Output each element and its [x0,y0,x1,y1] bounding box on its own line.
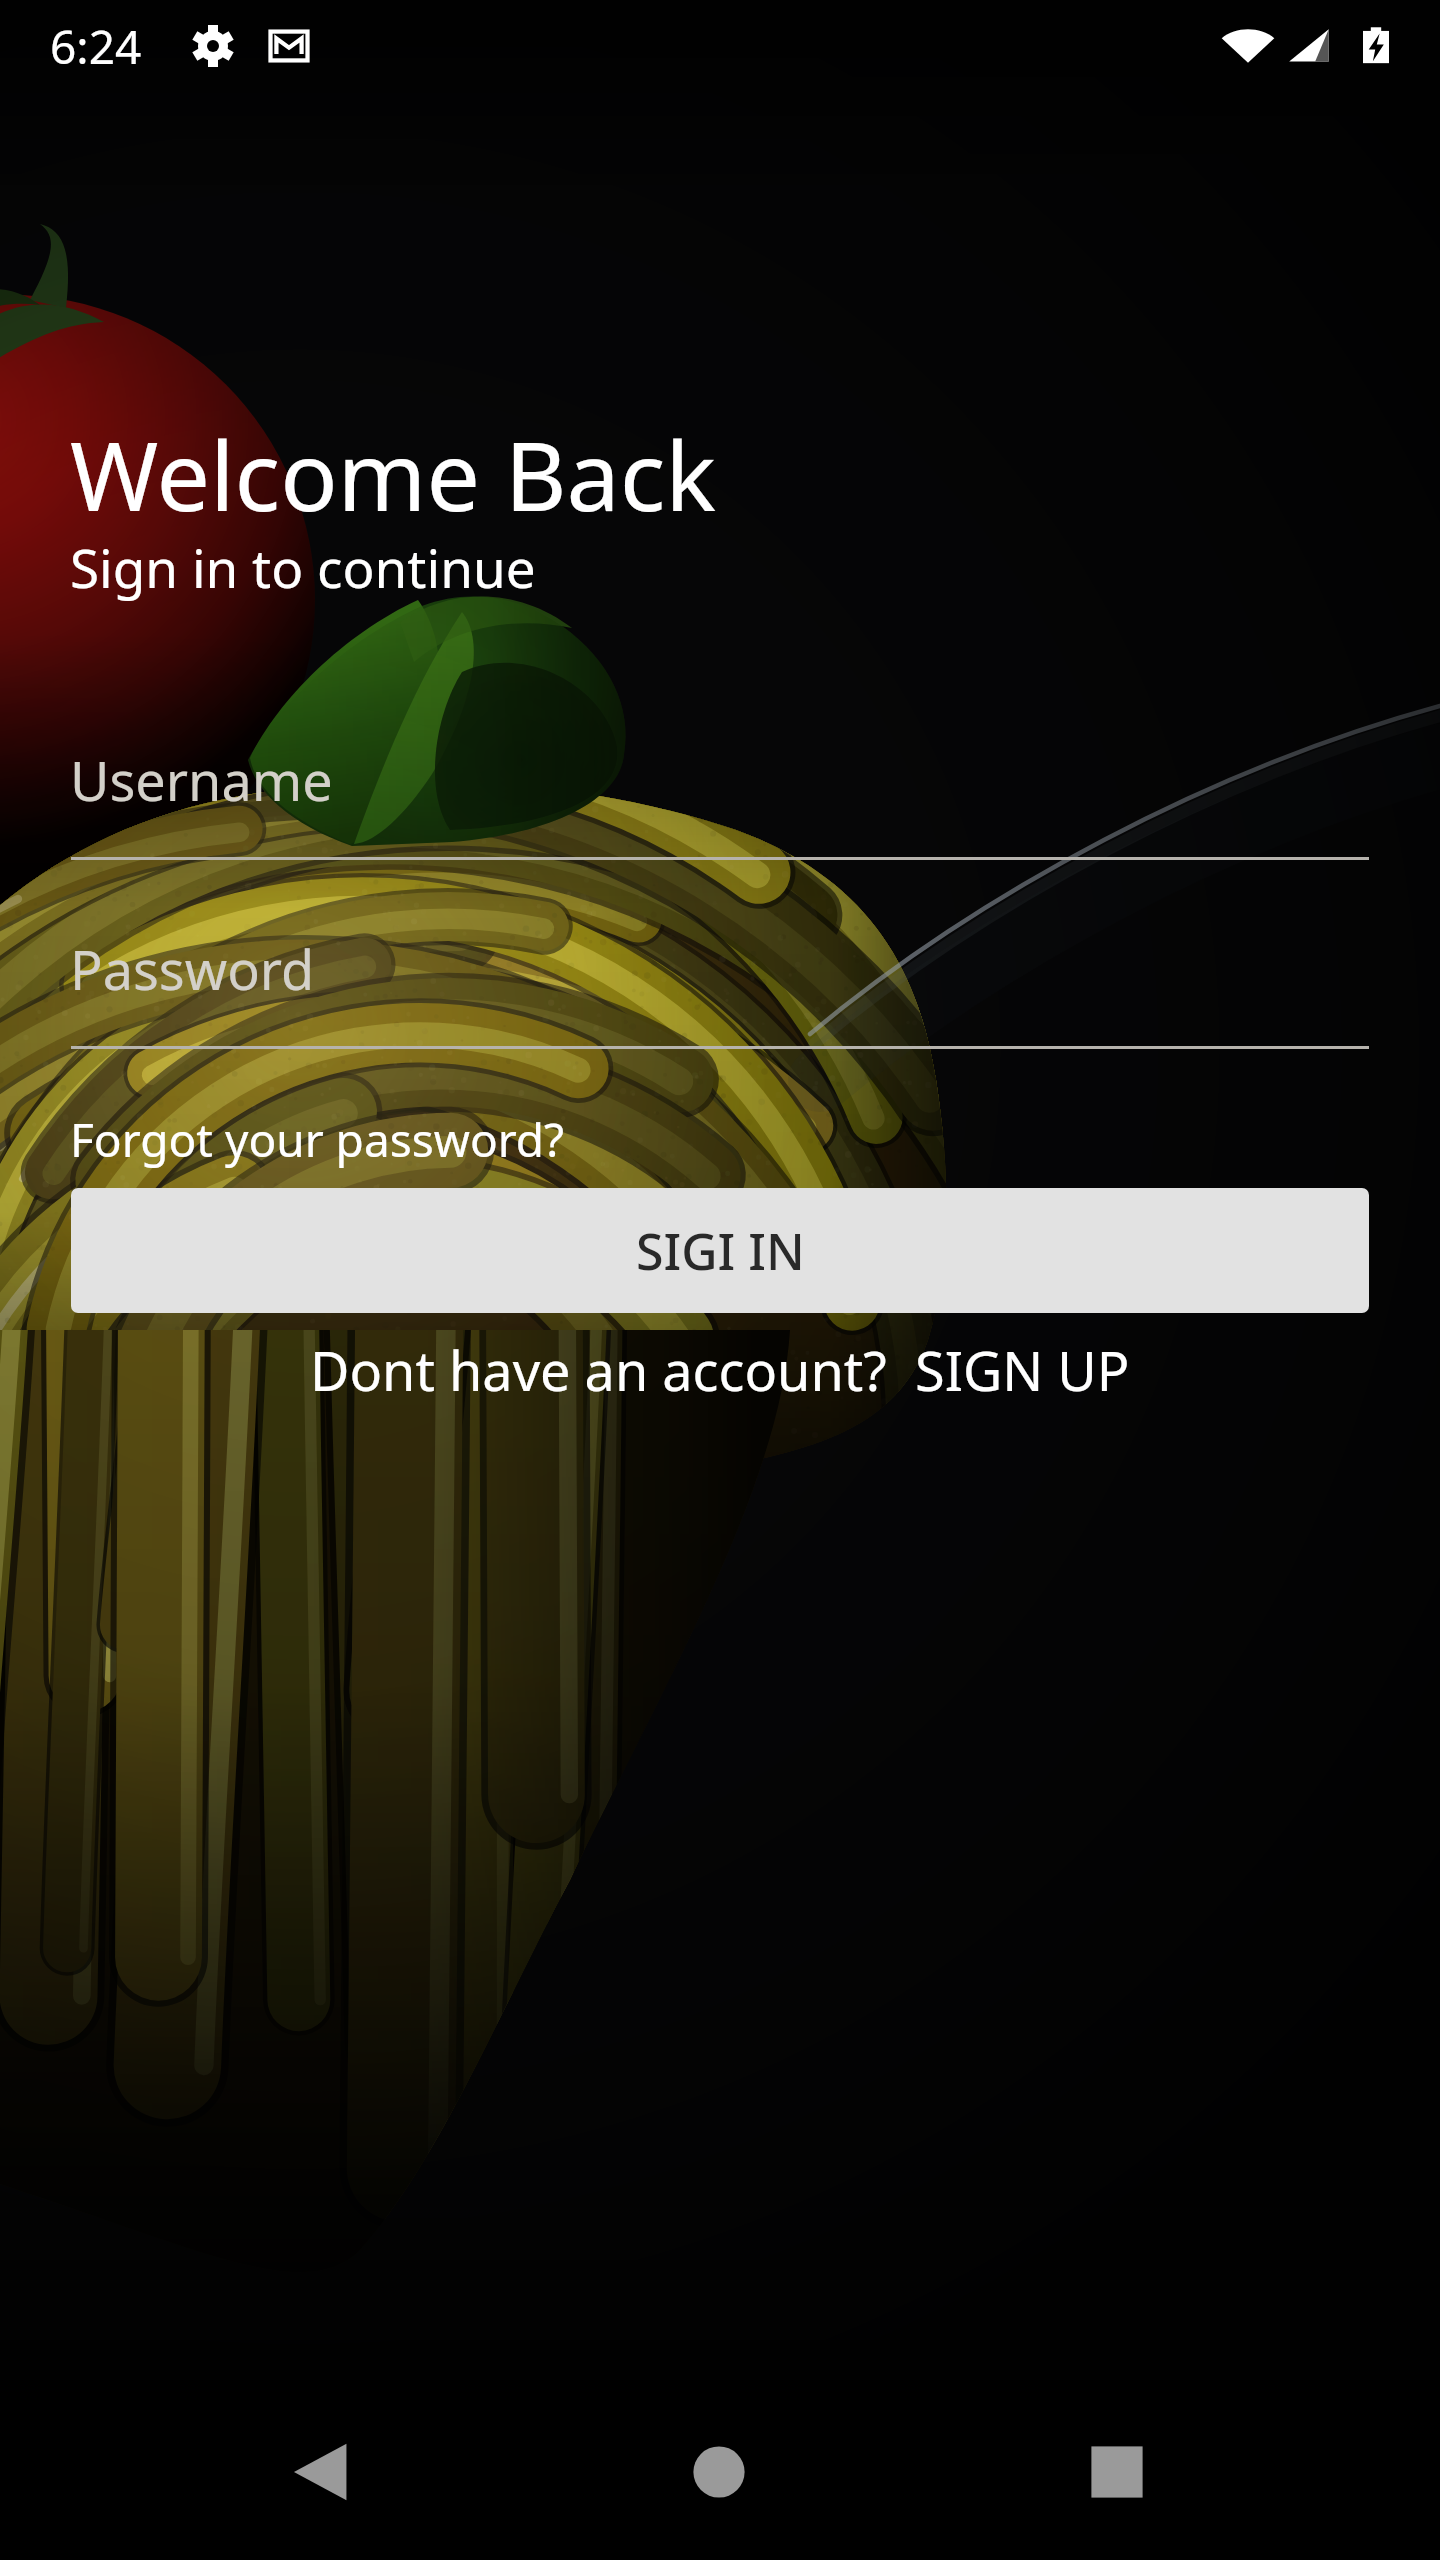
staticText: 6:24 [50,15,142,78]
staticText: Username [70,743,333,817]
button[interactable]: Recent apps [1037,2392,1197,2552]
button[interactable]: Forgot your password? [70,1108,565,1171]
staticText: Welcome Back [70,409,717,538]
staticText: SIGN UP [915,1333,1130,1407]
staticText: Sign in to continue [70,531,536,603]
button[interactable]: SIGI IN [71,1188,1369,1313]
button[interactable]: Home [639,2392,799,2552]
button[interactable]: Username [70,743,1440,817]
button[interactable]: SIGN UP [915,1333,1130,1407]
button[interactable]: Back [237,2392,397,2552]
staticText: Dont have an account? [310,1333,887,1407]
staticText: SIGI IN [636,1217,805,1285]
staticText: Forgot your password? [70,1108,565,1171]
staticText: Password [70,932,315,1006]
button[interactable]: Password [70,932,1440,1006]
